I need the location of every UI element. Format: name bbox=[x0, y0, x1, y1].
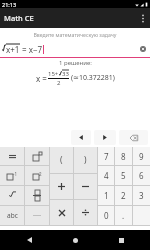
button[interactable]: Backspace bbox=[119, 130, 148, 145]
staticText: 8 bbox=[121, 151, 126, 162]
button[interactable]: 7 bbox=[98, 147, 114, 165]
staticText: 33 bbox=[62, 70, 69, 78]
button[interactable]: Back bbox=[22, 233, 36, 247]
staticText: 21:13 bbox=[2, 1, 17, 8]
button[interactable]: x bbox=[50, 200, 73, 225]
button[interactable]: blank bbox=[25, 206, 49, 225]
button[interactable]: / bbox=[74, 200, 97, 225]
staticText: Math CE bbox=[4, 13, 34, 23]
staticText: 4 bbox=[104, 170, 109, 181]
button[interactable]: 4 bbox=[98, 166, 114, 185]
button[interactable]: eq bbox=[0, 147, 24, 165]
button[interactable]: - bbox=[74, 174, 97, 199]
staticText: 9 bbox=[139, 151, 144, 162]
button[interactable]: + bbox=[50, 174, 73, 199]
staticText: 6 bbox=[139, 170, 144, 181]
staticText: 0 bbox=[104, 210, 109, 221]
staticText: 1 решение: bbox=[59, 59, 92, 67]
staticText: -1 bbox=[13, 171, 18, 177]
staticText: 7 bbox=[104, 151, 109, 162]
staticText: 15+ bbox=[48, 70, 59, 78]
button[interactable]: 8 bbox=[115, 147, 132, 165]
button[interactable]: . bbox=[115, 206, 132, 225]
button[interactable]: frac bbox=[25, 186, 49, 205]
button[interactable]: 2 bbox=[115, 186, 132, 205]
button[interactable]: 9 bbox=[133, 147, 150, 165]
staticText: . bbox=[122, 210, 125, 221]
button[interactable]: ( bbox=[50, 147, 73, 173]
button[interactable]: Home bbox=[68, 233, 82, 247]
button[interactable]: abc bbox=[0, 206, 24, 225]
button[interactable]: Clear bbox=[139, 45, 147, 53]
staticText: abc bbox=[7, 211, 18, 220]
staticText: ( bbox=[60, 154, 63, 166]
staticText: x+1 bbox=[6, 44, 20, 55]
button[interactable]: 3 bbox=[133, 186, 150, 205]
button[interactable]: ) bbox=[74, 147, 97, 173]
staticText: = x−7 bbox=[20, 44, 43, 55]
staticText: 3 bbox=[139, 190, 144, 201]
staticText: 1 bbox=[104, 190, 109, 201]
button[interactable]: 5 bbox=[115, 166, 132, 185]
button[interactable]: sq bbox=[25, 166, 49, 185]
button[interactable]: sqrt bbox=[0, 186, 24, 205]
staticText: x = bbox=[36, 73, 47, 84]
button[interactable]: Move cursor right bbox=[94, 130, 116, 145]
staticText: Введите математическую задачу bbox=[0, 31, 150, 38]
button[interactable]: 0 bbox=[98, 206, 114, 225]
button[interactable]: More options bbox=[136, 8, 150, 28]
button[interactable]: Move cursor left bbox=[71, 130, 91, 145]
staticText: (≈10.372281) bbox=[71, 73, 115, 83]
button[interactable]: pow bbox=[25, 147, 49, 165]
staticText: 2 bbox=[39, 171, 42, 177]
button[interactable]: Recents bbox=[114, 233, 128, 247]
button[interactable]: inv bbox=[0, 166, 24, 185]
button[interactable]: 1 bbox=[98, 186, 114, 205]
staticText: 2 bbox=[121, 190, 126, 201]
staticText: ) bbox=[84, 154, 87, 166]
staticText: 5 bbox=[121, 170, 126, 181]
staticText: 2 bbox=[57, 79, 61, 87]
button[interactable]: 6 bbox=[133, 166, 150, 185]
